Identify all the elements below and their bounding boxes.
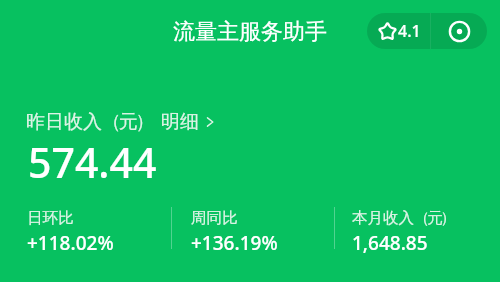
- staticText: +118.02%: [27, 230, 114, 253]
- staticText: 1,648.85: [352, 230, 428, 253]
- staticText: 明细: [161, 110, 199, 134]
- staticText: +136.19%: [191, 230, 278, 253]
- button[interactable]: 明细: [161, 110, 215, 134]
- staticText: 日环比: [27, 208, 74, 228]
- staticText: 流量主服务助手: [173, 18, 327, 46]
- staticText: 周同比: [191, 208, 238, 228]
- button[interactable]: Mini program menu: [431, 13, 487, 49]
- button[interactable]: 周同比: [191, 208, 278, 253]
- staticText: 本月收入（元）: [352, 208, 454, 228]
- button[interactable]: 本月收入（元）: [352, 208, 454, 253]
- button[interactable]: Rating 4.1: [367, 13, 430, 49]
- button[interactable]: 日环比: [27, 208, 114, 253]
- staticText: 4.1: [398, 20, 421, 42]
- staticText: 昨日收入（元）: [26, 110, 153, 134]
- staticText: 574.44: [28, 134, 157, 190]
